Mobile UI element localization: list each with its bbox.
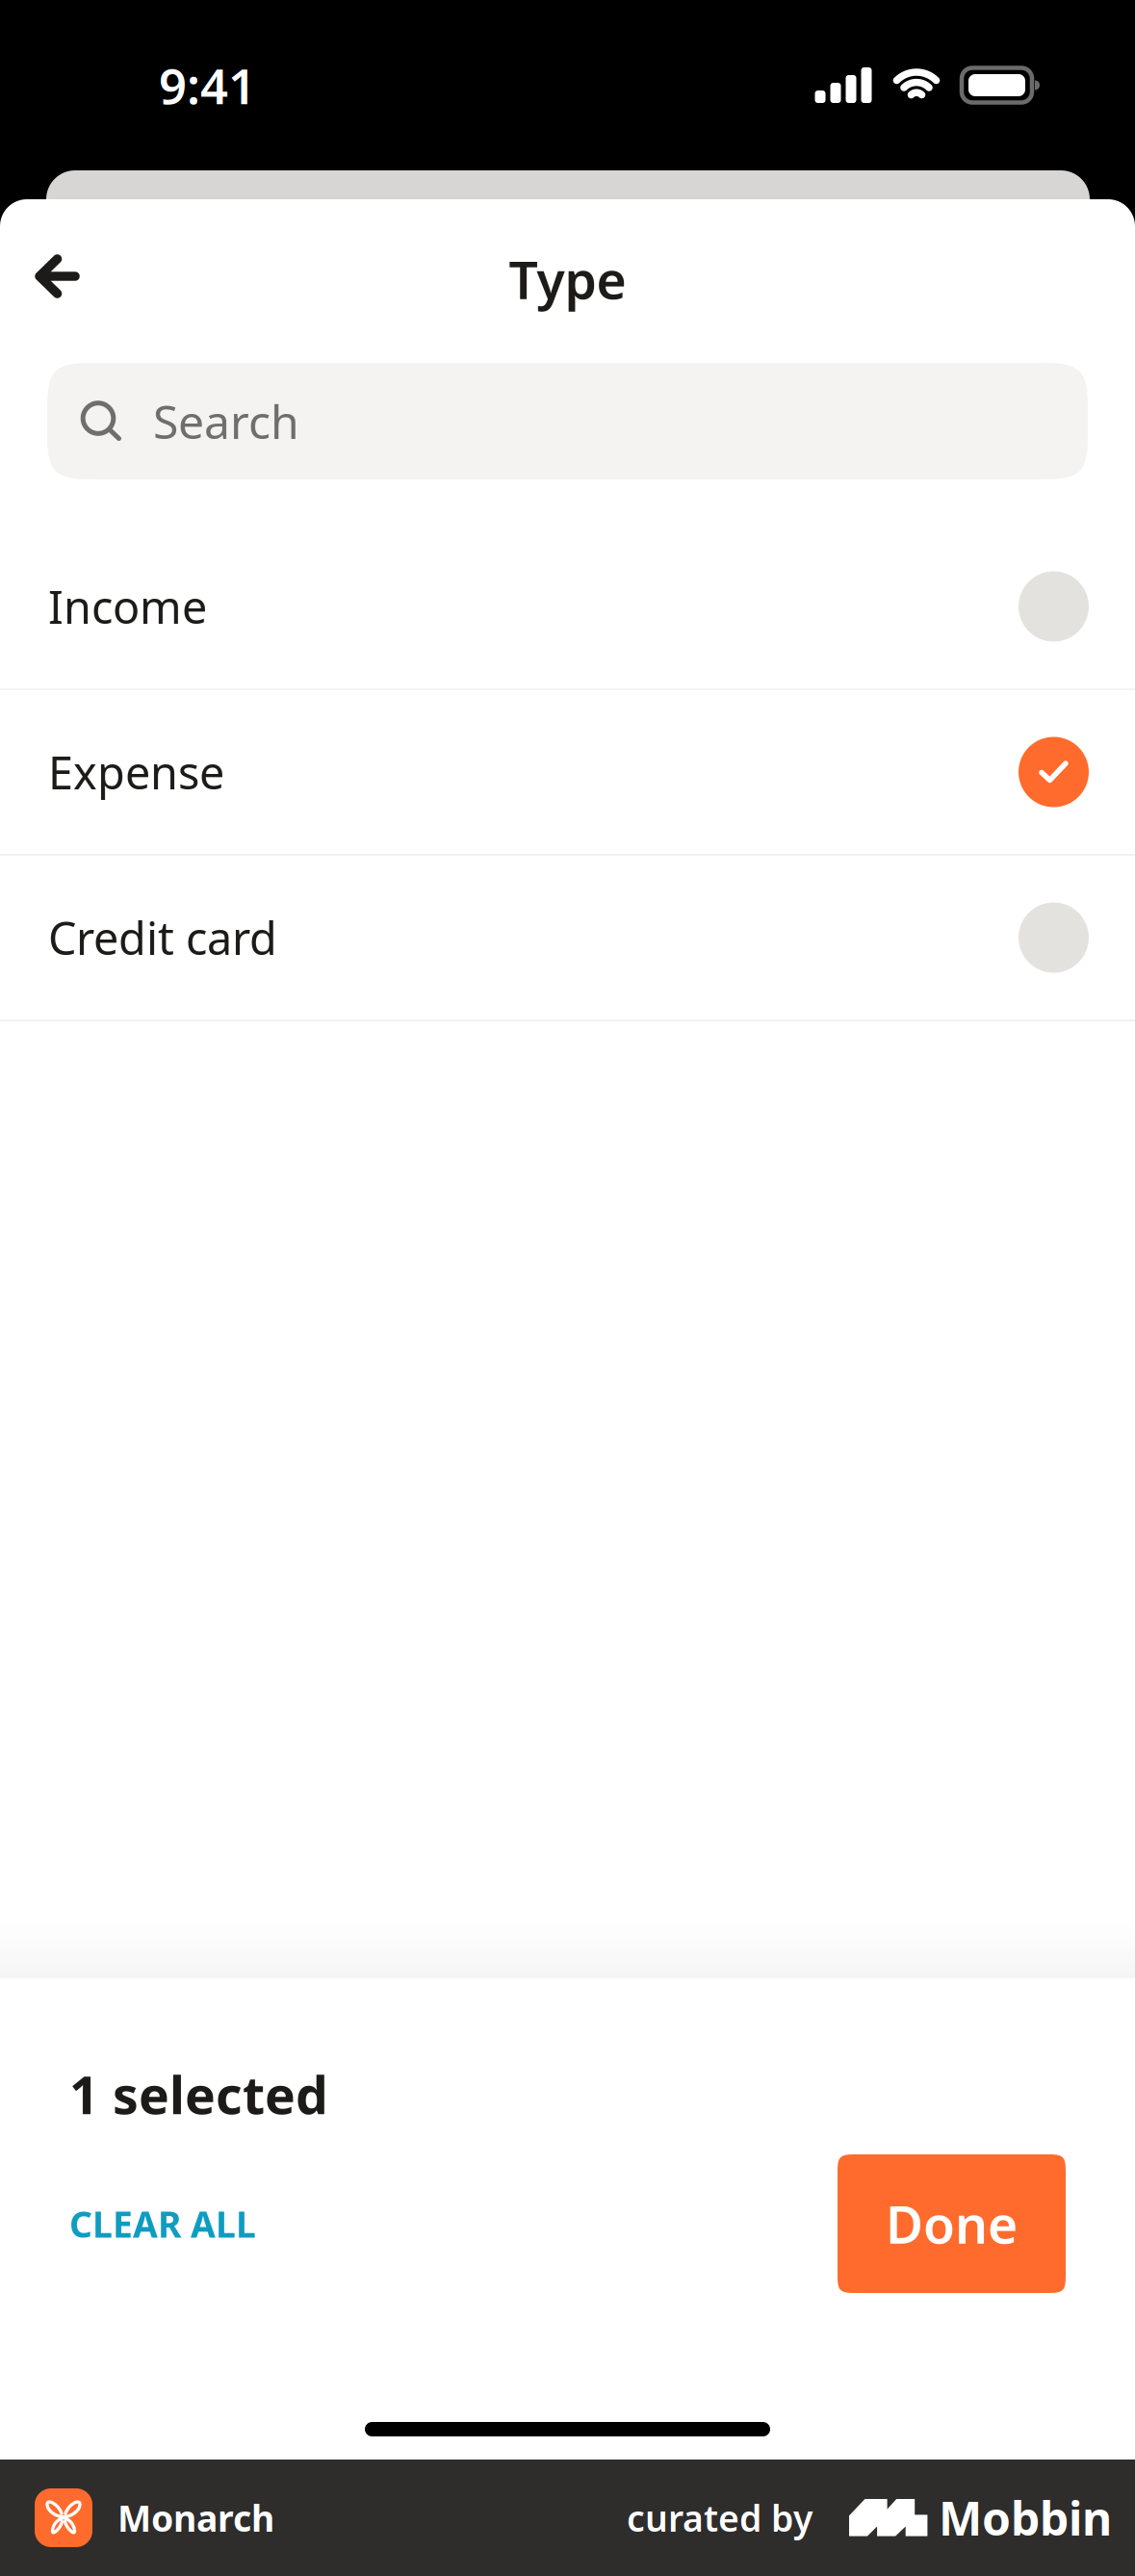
staticText: curated by <box>627 2494 813 2542</box>
staticText: Expense <box>48 742 224 802</box>
staticText: Mobbin <box>939 2487 1112 2548</box>
staticText: 9:41 <box>159 53 256 118</box>
staticText: Search <box>153 390 299 452</box>
button[interactable]: Done <box>838 2154 1066 2293</box>
staticText: Income <box>48 577 207 636</box>
button[interactable]: Expense <box>0 690 1135 854</box>
button[interactable]: CLEAR ALL <box>69 2154 256 2293</box>
button[interactable]: Back <box>0 218 106 318</box>
staticText: Credit card <box>48 908 277 967</box>
staticText: Done <box>886 2190 1018 2258</box>
button[interactable]: Credit card <box>0 856 1135 1019</box>
staticText: Type <box>509 245 626 313</box>
staticText: 1 selected <box>69 2060 328 2128</box>
button[interactable]: Search <box>47 363 1088 479</box>
button[interactable]: Income <box>0 525 1135 688</box>
staticText: CLEAR ALL <box>69 2200 256 2248</box>
staticText: Monarch <box>117 2494 274 2542</box>
